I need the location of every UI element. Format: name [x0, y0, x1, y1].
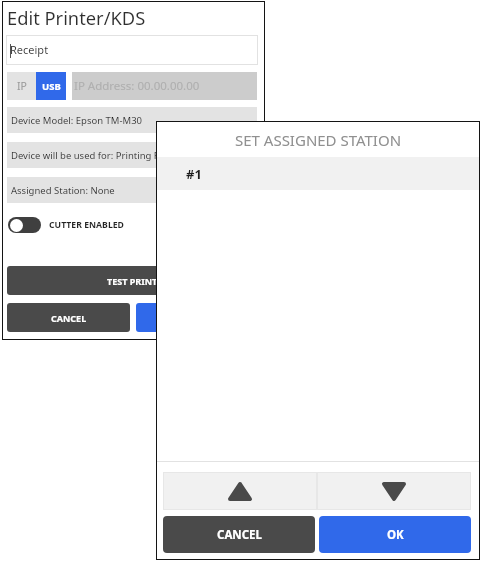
- staticText: USB: [42, 80, 61, 93]
- button[interactable]: Device will be used for: Printing Receip…: [7, 142, 257, 168]
- staticText: Device will be used for: Printing Receip…: [11, 149, 192, 162]
- staticText: CUTTER ENABLED: [49, 219, 124, 231]
- staticText: #1: [186, 165, 202, 183]
- staticText: IP Address: 00.00.00.00: [74, 78, 200, 94]
- button[interactable]: IP: [7, 72, 36, 100]
- button[interactable]: Assigned Station: None: [7, 177, 257, 203]
- button[interactable]: Receipt: [6, 35, 258, 65]
- button[interactable]: IP Address: 00.00.00.00: [72, 72, 257, 100]
- staticText: TEST PRINT: [107, 275, 158, 287]
- staticText: CANCEL: [217, 527, 262, 543]
- button[interactable]: CANCEL: [163, 516, 315, 553]
- staticText: Receipt: [10, 42, 49, 57]
- button[interactable]: USB: [36, 72, 66, 100]
- button[interactable]: CANCEL: [7, 303, 130, 332]
- button[interactable]: OK: [319, 516, 471, 553]
- staticText: Edit Printer/KDS: [7, 5, 146, 30]
- button[interactable]: Device Model: Epson TM-M30: [7, 107, 257, 133]
- button[interactable]: #1: [157, 157, 479, 190]
- staticText: Device Model: Epson TM-M30: [11, 114, 143, 127]
- staticText: OK: [387, 527, 404, 543]
- button[interactable]: Cutter enabled toggle: [8, 217, 41, 233]
- button[interactable]: Move up: [163, 472, 317, 510]
- button[interactable]: SAVE: [136, 303, 258, 332]
- staticText: IP: [17, 79, 27, 93]
- staticText: SET ASSIGNED STATION: [235, 130, 402, 150]
- button[interactable]: TEST PRINT: [7, 266, 258, 295]
- staticText: CANCEL: [51, 312, 87, 324]
- staticText: Assigned Station: None: [11, 184, 115, 197]
- button[interactable]: Move down: [317, 472, 471, 510]
